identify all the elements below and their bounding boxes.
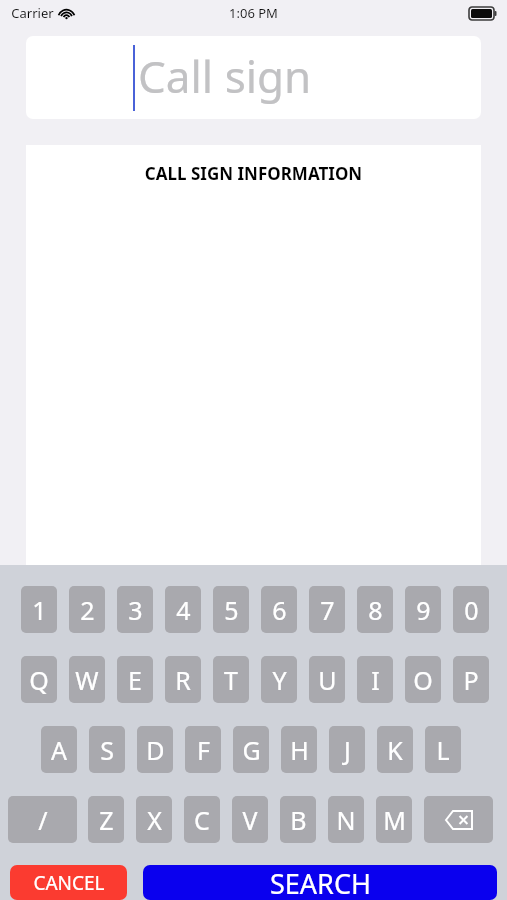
button[interactable]: 1 bbox=[21, 586, 57, 633]
button[interactable]: 8 bbox=[357, 586, 393, 633]
button[interactable]: 0 bbox=[453, 586, 489, 633]
button[interactable]: V bbox=[232, 796, 268, 843]
staticText: 2 bbox=[80, 593, 95, 627]
button[interactable]: O bbox=[405, 656, 441, 703]
button[interactable]: Y bbox=[261, 656, 297, 703]
staticText: L bbox=[436, 733, 450, 767]
staticText: T bbox=[224, 663, 238, 697]
staticText: A bbox=[51, 733, 67, 767]
button[interactable]: X bbox=[136, 796, 172, 843]
staticText: Z bbox=[99, 803, 114, 837]
button[interactable]: B bbox=[280, 796, 316, 843]
staticText: Call sign bbox=[138, 46, 312, 106]
staticText: N bbox=[336, 803, 356, 837]
button[interactable]: 6 bbox=[261, 586, 297, 633]
staticText: 4 bbox=[176, 593, 191, 627]
button[interactable]: C bbox=[184, 796, 220, 843]
button[interactable]: L bbox=[425, 726, 461, 773]
staticText: CANCEL bbox=[33, 870, 105, 896]
button[interactable]: G bbox=[233, 726, 269, 773]
button[interactable]: CANCEL bbox=[10, 865, 127, 900]
button[interactable]: P bbox=[453, 656, 489, 703]
button[interactable]: M bbox=[376, 796, 412, 843]
button[interactable]: 5 bbox=[213, 586, 249, 633]
staticText: Y bbox=[272, 663, 287, 697]
staticText: W bbox=[75, 663, 99, 697]
button[interactable]: U bbox=[309, 656, 345, 703]
button[interactable]: F bbox=[185, 726, 221, 773]
staticText: 8 bbox=[368, 593, 383, 627]
staticText: J bbox=[344, 733, 351, 767]
staticText: D bbox=[146, 733, 165, 767]
staticText: X bbox=[147, 803, 162, 837]
button[interactable]: Q bbox=[21, 656, 57, 703]
staticText: K bbox=[387, 733, 403, 767]
staticText: E bbox=[128, 663, 142, 697]
button[interactable]: E bbox=[117, 656, 153, 703]
button[interactable]: N bbox=[328, 796, 364, 843]
staticText: Q bbox=[29, 663, 49, 697]
button[interactable]: H bbox=[281, 726, 317, 773]
staticText: V bbox=[242, 803, 258, 837]
button[interactable]: 7 bbox=[309, 586, 345, 633]
staticText: Carrier bbox=[11, 4, 54, 22]
button[interactable]: R bbox=[165, 656, 201, 703]
staticText: C bbox=[194, 803, 210, 837]
button[interactable]: 2 bbox=[69, 586, 105, 633]
button[interactable]: 4 bbox=[165, 586, 201, 633]
staticText: M bbox=[383, 803, 406, 837]
staticText: 9 bbox=[416, 593, 431, 627]
staticText: F bbox=[197, 733, 210, 767]
staticText: 0 bbox=[464, 593, 479, 627]
staticText: CALL SIGN INFORMATION bbox=[26, 162, 481, 185]
button[interactable]: J bbox=[329, 726, 365, 773]
button[interactable]: I bbox=[357, 656, 393, 703]
staticText: 1 bbox=[32, 593, 47, 627]
button[interactable]: 9 bbox=[405, 586, 441, 633]
button[interactable]: / bbox=[8, 796, 77, 843]
staticText: / bbox=[38, 803, 48, 837]
staticText: 6 bbox=[272, 593, 287, 627]
staticText: G bbox=[242, 733, 261, 767]
staticText: P bbox=[463, 663, 479, 697]
staticText: 5 bbox=[224, 593, 239, 627]
button[interactable]: SEARCH bbox=[143, 865, 497, 900]
staticText: I bbox=[371, 663, 380, 697]
staticText: H bbox=[290, 733, 309, 767]
button[interactable]: K bbox=[377, 726, 413, 773]
staticText: 1:06 PM bbox=[229, 4, 278, 22]
staticText: 7 bbox=[320, 593, 335, 627]
button[interactable]: Call sign bbox=[26, 36, 481, 119]
staticText: SEARCH bbox=[270, 865, 371, 900]
button[interactable]: Z bbox=[88, 796, 124, 843]
button[interactable]: D bbox=[137, 726, 173, 773]
staticText: U bbox=[318, 663, 337, 697]
button[interactable]: T bbox=[213, 656, 249, 703]
button[interactable]: Backspace bbox=[424, 796, 493, 843]
button[interactable]: S bbox=[89, 726, 125, 773]
button[interactable]: A bbox=[41, 726, 77, 773]
button[interactable]: W bbox=[69, 656, 105, 703]
staticText: B bbox=[290, 803, 307, 837]
staticText: R bbox=[175, 663, 191, 697]
button[interactable]: 3 bbox=[117, 586, 153, 633]
staticText: S bbox=[100, 733, 114, 767]
staticText: O bbox=[413, 663, 433, 697]
staticText: 3 bbox=[128, 593, 143, 627]
